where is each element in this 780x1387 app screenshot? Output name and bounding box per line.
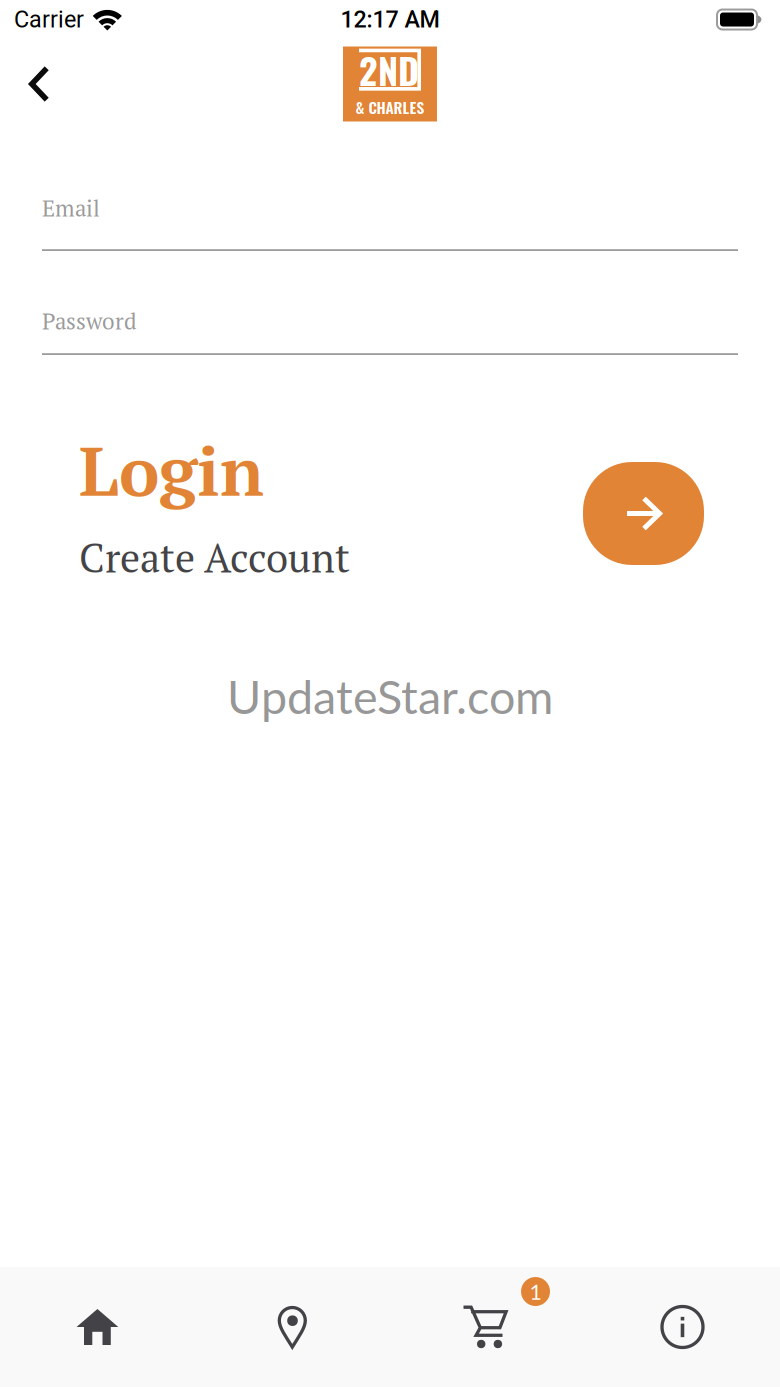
staticText: Password <box>42 306 137 336</box>
button[interactable]: Info <box>585 1267 780 1387</box>
staticText: UpdateStar.com <box>227 668 553 724</box>
staticText: 12:17 AM <box>340 6 439 33</box>
button[interactable]: Cart <box>390 1267 585 1387</box>
button[interactable]: Password <box>42 306 738 355</box>
staticText: 1 <box>529 1279 541 1304</box>
button[interactable]: Create Account <box>79 531 350 563</box>
staticText: 2ND <box>359 43 419 96</box>
button[interactable]: Back <box>0 46 76 121</box>
staticText: Login <box>79 425 264 515</box>
staticText: Carrier <box>14 6 84 33</box>
button[interactable]: Login <box>79 425 264 492</box>
button[interactable]: Email <box>42 193 738 251</box>
staticText: Email <box>42 193 100 223</box>
staticText: & CHARLES <box>355 96 424 118</box>
button[interactable]: Home <box>0 1267 195 1387</box>
button[interactable]: Continue <box>583 425 704 565</box>
button[interactable]: Stores <box>195 1267 390 1387</box>
staticText: Create Account <box>79 531 350 584</box>
